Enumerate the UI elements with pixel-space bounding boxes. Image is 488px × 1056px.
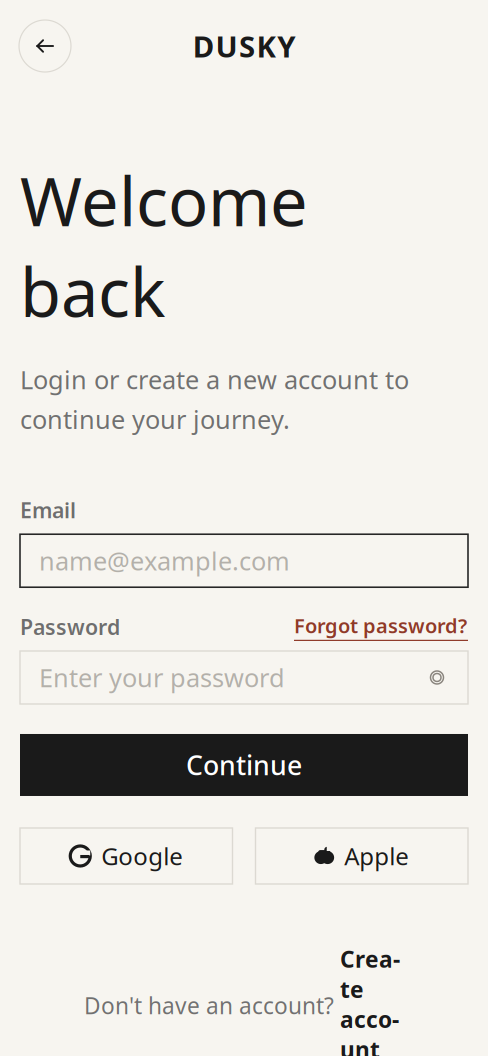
staticText: DUSKY [193, 26, 295, 65]
button[interactable]: Show password [420, 660, 454, 694]
button[interactable]: Google [20, 828, 232, 884]
staticText: Continue [186, 747, 302, 783]
staticText: Don't have an account? [84, 990, 340, 1020]
button[interactable]: Continue [20, 734, 468, 796]
staticText: Apple [344, 840, 409, 872]
button[interactable]: Create account [340, 944, 404, 1056]
button[interactable]: Back [19, 20, 71, 72]
staticText: Create account [340, 944, 400, 1056]
staticText: Forgot password? [294, 612, 467, 639]
staticText: Login or create a new account to continu… [20, 363, 409, 436]
button[interactable]: Apple [255, 828, 468, 884]
staticText: Enter your password [39, 661, 285, 694]
staticText: Welcome back [20, 155, 308, 337]
staticText: Email [20, 496, 76, 524]
staticText: Google [101, 840, 183, 872]
staticText: Password [20, 612, 120, 641]
button[interactable]: Forgot password? [294, 612, 468, 641]
staticText: name@example.com [39, 544, 290, 577]
